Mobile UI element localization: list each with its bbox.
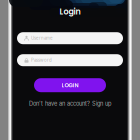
staticText: Login xyxy=(59,6,80,17)
staticText: Password xyxy=(31,57,52,63)
staticText: Username xyxy=(31,35,53,41)
staticText: LOGIN xyxy=(61,81,78,89)
button[interactable]: LOGIN xyxy=(34,78,106,92)
staticText: Don't have an account? Sign up xyxy=(29,100,111,107)
button[interactable]: Don't have an account? Sign up xyxy=(29,100,111,107)
